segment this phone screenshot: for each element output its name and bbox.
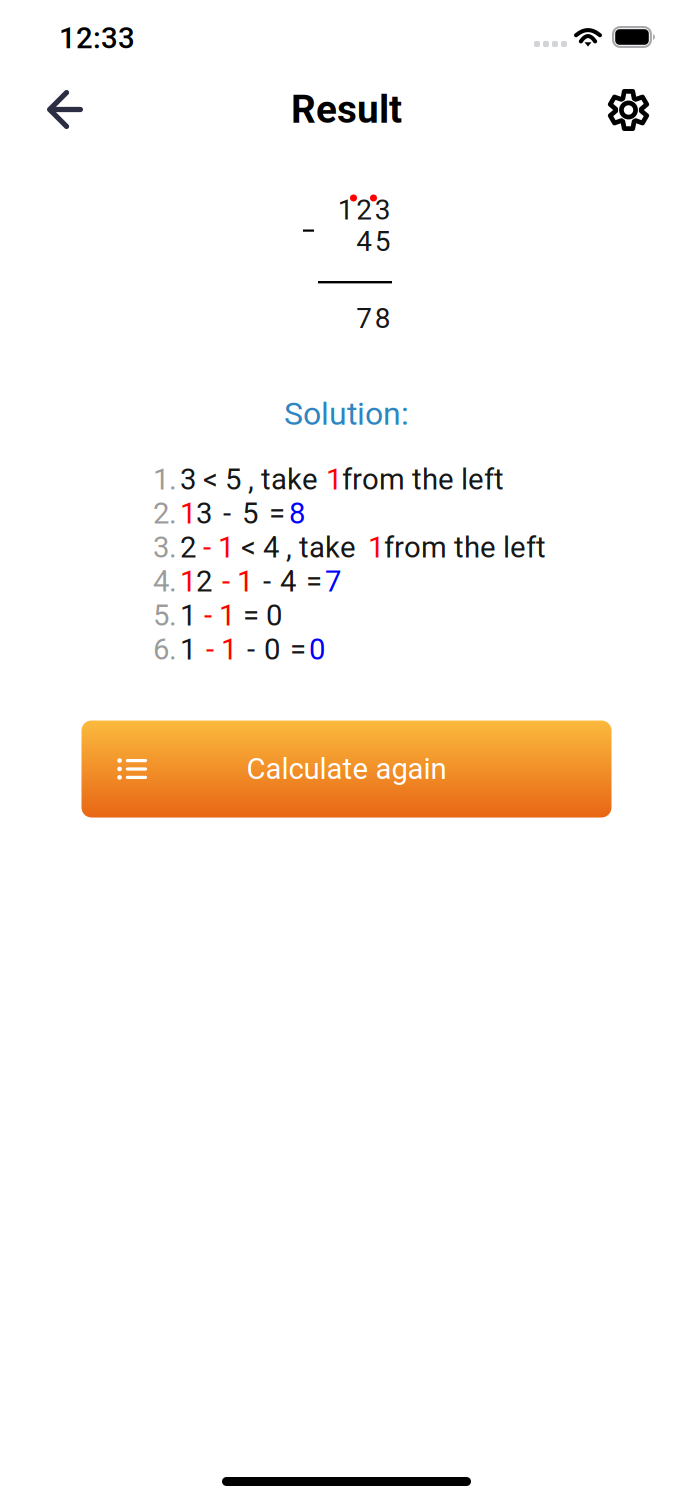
staticText: 1 <box>180 564 196 599</box>
staticText: 3 <box>375 194 391 226</box>
staticText: from the left <box>384 530 546 565</box>
staticText: - 1 <box>203 530 234 565</box>
staticText: 5 <box>242 496 258 531</box>
staticText: 3. <box>153 530 177 565</box>
staticText: 7 <box>356 302 372 335</box>
staticText: 8 <box>375 302 391 335</box>
staticText: = <box>243 598 259 633</box>
staticText: = <box>306 564 322 599</box>
staticText: Calculate again <box>246 752 446 786</box>
staticText: 4. <box>153 564 177 599</box>
staticText: 5 <box>375 225 391 258</box>
staticText: 1 <box>180 496 196 531</box>
staticText: - <box>263 564 271 599</box>
staticText: 4 <box>356 225 372 258</box>
staticText: 3 < 5 , take <box>180 462 325 497</box>
staticText: 1 <box>180 632 196 667</box>
staticText: 6. <box>153 632 177 667</box>
staticText: 7 <box>325 564 341 599</box>
staticText: 3 <box>196 496 212 531</box>
staticText: - <box>247 632 255 667</box>
staticText: 4 <box>280 564 296 599</box>
staticText: 0 <box>264 632 280 667</box>
staticText: Solution: <box>284 395 409 432</box>
staticText: from the left <box>342 462 504 497</box>
button[interactable]: Back <box>26 69 104 149</box>
staticText: 2. <box>153 496 177 531</box>
staticText: 5. <box>153 598 177 633</box>
staticText: - 1 <box>204 598 235 633</box>
staticText: = <box>290 632 306 667</box>
staticText: < 4 , take <box>241 530 363 565</box>
staticText: Result <box>291 87 402 132</box>
staticText: 1 <box>180 598 196 633</box>
staticText: 0 <box>309 632 325 667</box>
staticText: 2 <box>196 564 212 599</box>
staticText: 8 <box>289 496 305 531</box>
staticText: - 1 <box>222 564 253 599</box>
button[interactable]: Settings <box>586 69 671 150</box>
staticText: 1 <box>368 530 384 565</box>
staticText: 12:33 <box>59 21 135 55</box>
staticText: 2 <box>180 530 196 565</box>
staticText: = <box>269 496 285 531</box>
button[interactable]: Calculate again <box>81 720 611 817</box>
staticText: 1. <box>153 462 177 497</box>
staticText: 1 <box>338 194 354 226</box>
staticText: 0 <box>266 598 282 633</box>
staticText: 2 <box>356 194 372 226</box>
staticText: - 1 <box>206 632 237 667</box>
staticText: - <box>223 496 231 531</box>
staticText: 1 <box>326 462 342 497</box>
